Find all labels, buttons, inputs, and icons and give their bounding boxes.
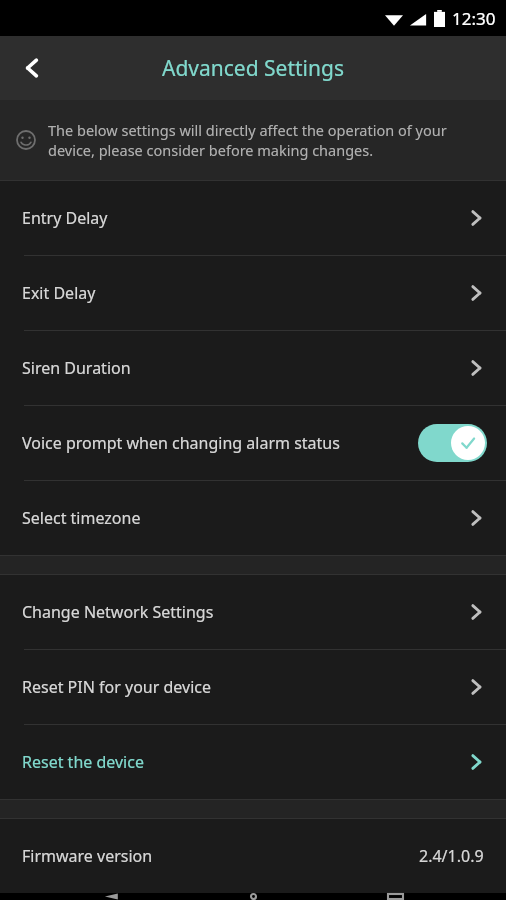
button[interactable]: Siren Duration [0,331,506,405]
staticText: Entry Delay [22,207,108,229]
button[interactable]: Entry Delay [0,181,506,255]
staticText: Select timezone [22,507,141,529]
staticText: 2.4/1.0.9 [419,845,484,867]
staticText: Reset PIN for your device [22,676,211,698]
button[interactable]: Recents [365,893,425,900]
button[interactable]: Back [0,36,64,100]
button[interactable]: Change Network Settings [0,575,506,649]
staticText: Advanced Settings [162,54,344,83]
button[interactable]: Firmware version [0,819,506,893]
button[interactable]: Reset the device [0,725,506,799]
button[interactable]: Reset PIN for your device [0,650,506,724]
button[interactable]: Voice prompt when changing alarm status [0,406,506,480]
staticText: The below settings will directly affect … [48,120,484,160]
button[interactable]: Voice prompt toggle, on [418,424,487,462]
staticText: Voice prompt when changing alarm status [22,432,340,454]
button[interactable]: Exit Delay [0,256,506,330]
button[interactable]: Home [223,893,283,900]
staticText: Change Network Settings [22,601,214,623]
staticText: Reset the device [22,751,144,773]
staticText: Firmware version [22,845,153,867]
staticText: 12:30 [452,7,496,30]
staticText: Exit Delay [22,282,96,304]
staticText: Siren Duration [22,357,131,379]
button[interactable]: Select timezone [0,481,506,555]
button[interactable]: Back [82,893,142,900]
